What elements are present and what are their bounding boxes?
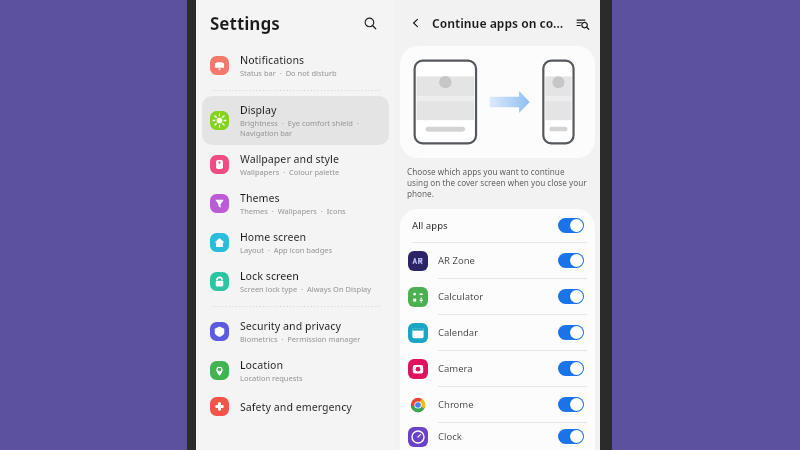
staticText: All apps	[412, 219, 448, 232]
staticText: Wallpapers · Colour palette	[240, 167, 340, 177]
button[interactable]: Back	[403, 10, 429, 36]
staticText: AR Zone	[438, 254, 475, 267]
staticText: Display	[240, 103, 277, 117]
button[interactable]: Location	[202, 351, 389, 390]
staticText: Layout · App icon badges	[240, 245, 333, 255]
button[interactable]: Display	[202, 96, 389, 145]
staticText: Choose which apps you want to continue	[407, 166, 565, 177]
staticText: Settings	[210, 12, 280, 35]
staticText: Themes · Wallpapers · Icons	[240, 206, 346, 216]
staticText: Lock screen	[240, 269, 299, 283]
button[interactable]: All apps	[400, 209, 595, 242]
button[interactable]: Lock screen	[202, 262, 389, 301]
staticText: Biometrics · Permission manager	[240, 334, 361, 344]
staticText: using on the cover screen when you close…	[407, 177, 587, 188]
staticText: Home screen	[240, 230, 307, 244]
staticText: Chrome	[438, 398, 474, 411]
button[interactable]: Search	[355, 8, 385, 38]
staticText: Location	[240, 358, 284, 372]
staticText: Navigation bar	[240, 128, 293, 138]
staticText: Continue apps on cover…	[432, 15, 570, 31]
button[interactable]: Security and privacy	[202, 312, 389, 351]
staticText: Location requests	[240, 373, 303, 383]
staticText: Status bar · Do not disturb	[240, 68, 337, 78]
button[interactable]: Calculator	[400, 279, 595, 314]
staticText: Themes	[240, 191, 280, 205]
button[interactable]: Camera	[400, 351, 595, 386]
staticText: Notifications	[240, 53, 305, 67]
staticText: Clock	[438, 430, 462, 443]
staticText: Wallpaper and style	[240, 152, 339, 166]
staticText: Security and privacy	[240, 319, 341, 333]
staticText: Calendar	[438, 326, 479, 339]
staticText: Screen lock type · Always On Display	[240, 284, 372, 294]
button[interactable]: Search in settings	[570, 11, 594, 35]
staticText: Safety and emergency	[240, 400, 352, 414]
button[interactable]: AR Zone	[400, 243, 595, 278]
button[interactable]: Themes	[202, 184, 389, 223]
button[interactable]: Calendar	[400, 315, 595, 350]
button[interactable]: Safety and emergency	[202, 390, 389, 423]
button[interactable]: Chrome	[400, 387, 595, 422]
button[interactable]: Notifications	[202, 46, 389, 85]
staticText: phone.	[407, 188, 434, 199]
button[interactable]: Clock	[400, 423, 595, 450]
staticText: Brightness · Eye comfort shield ·	[240, 118, 359, 128]
staticText: Calculator	[438, 290, 484, 303]
button[interactable]: Home screen	[202, 223, 389, 262]
button[interactable]: Wallpaper and style	[202, 145, 389, 184]
staticText: Camera	[438, 362, 473, 375]
